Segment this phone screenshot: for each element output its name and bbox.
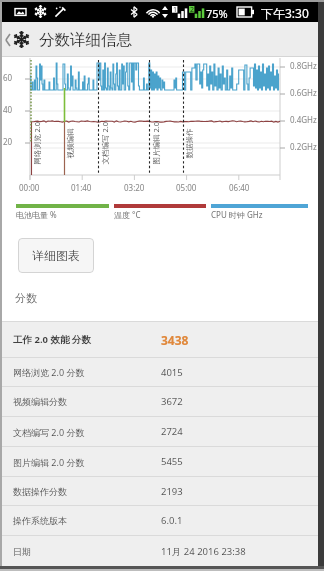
staticText: CPU 时钟 GHz: [211, 209, 263, 220]
staticText: 分数详细信息: [39, 30, 132, 50]
button[interactable]: 网络浏览 2.0 分数: [2, 358, 318, 386]
staticText: 分数: [15, 291, 37, 305]
staticText: 图片编辑 2.0: [150, 121, 160, 164]
button[interactable]: 图片编辑 2.0 分数: [2, 447, 318, 476]
staticText: 视频编辑分数: [13, 396, 67, 407]
staticText: 06:40: [229, 182, 250, 193]
staticText: 电池电量 %: [16, 209, 57, 220]
staticText: 20: [3, 136, 13, 147]
staticText: 00:00: [19, 182, 40, 193]
staticText: 文档编写 2.0: [99, 121, 109, 164]
staticText: 工作 2.0 效能 分数: [13, 333, 91, 346]
staticText: 01:40: [71, 182, 92, 193]
staticText: 0.2GHz: [290, 141, 317, 152]
staticText: 数据操作分数: [13, 486, 67, 497]
staticText: 40: [3, 104, 13, 115]
button[interactable]: 日期: [2, 536, 318, 566]
staticText: 网络浏览 2.0: [31, 121, 41, 164]
staticText: 日期: [13, 546, 31, 557]
staticText: 视频编辑: [65, 128, 74, 158]
staticText: 温度 °C: [114, 209, 141, 220]
staticText: 数据操作: [184, 128, 193, 158]
staticText: 2193: [161, 485, 183, 498]
button[interactable]: 工作 2.0 效能 分数: [2, 322, 318, 357]
staticText: 05:00: [176, 182, 197, 193]
staticText: 4015: [161, 366, 183, 379]
staticText: 60: [3, 72, 13, 83]
button[interactable]: 数据操作分数: [2, 477, 318, 505]
staticText: 11月 24 2016 23:38: [161, 545, 246, 558]
staticText: 下午3:30: [261, 5, 309, 21]
staticText: 文档编写 2.0 分数: [13, 426, 85, 438]
staticText: 5455: [161, 455, 183, 468]
staticText: 0.8GHz: [290, 60, 317, 71]
staticText: 75%: [206, 6, 228, 21]
staticText: 2724: [161, 425, 183, 438]
staticText: 1: [173, 5, 178, 15]
staticText: 详细图表: [32, 248, 80, 263]
staticText: 6.0.1: [161, 514, 183, 527]
staticText: 0.6GHz: [290, 87, 317, 98]
staticText: 网络浏览 2.0 分数: [13, 366, 85, 378]
staticText: 3438: [161, 332, 189, 348]
button[interactable]: 操作系统版本: [2, 506, 318, 535]
button[interactable]: 文档编写 2.0 分数: [2, 417, 318, 446]
staticText: 3672: [161, 395, 183, 408]
staticText: 图片编辑 2.0 分数: [13, 456, 85, 468]
staticText: 操作系统版本: [13, 515, 67, 526]
button[interactable]: Back: [2, 22, 13, 57]
button[interactable]: 详细图表: [18, 238, 94, 273]
button[interactable]: 视频编辑分数: [2, 387, 318, 416]
staticText: 2: [190, 5, 195, 15]
staticText: 0.4GHz: [290, 114, 317, 125]
staticText: 03:20: [124, 182, 145, 193]
